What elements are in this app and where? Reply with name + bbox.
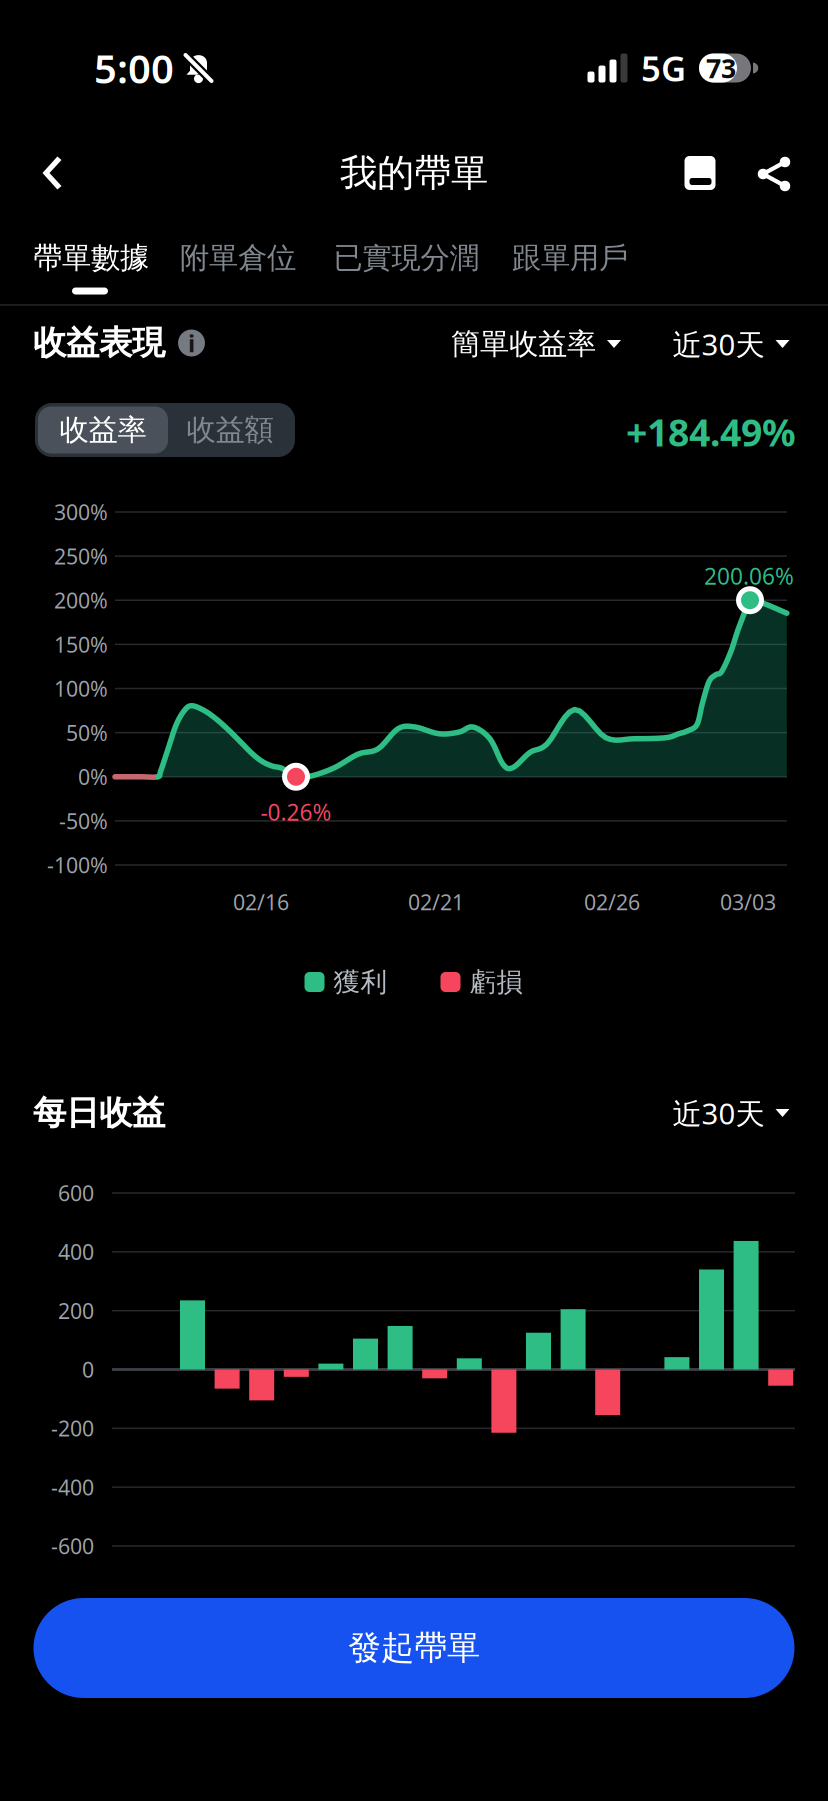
staticText: 5G (641, 45, 686, 91)
button[interactable]: 發起帶單 (33, 1598, 794, 1698)
staticText: 收益額 (186, 412, 273, 448)
button[interactable]: 近30天 (672, 1081, 789, 1144)
staticText: 附單倉位 (180, 240, 296, 276)
button[interactable]: 跟單用戶 (499, 221, 641, 295)
staticText: i (188, 327, 195, 359)
staticText: 02/21 (408, 888, 464, 916)
staticText: 02/16 (233, 888, 289, 916)
staticText: 收益表現 (33, 322, 165, 363)
staticText: +184.49% (626, 407, 796, 457)
staticText: 150% (54, 630, 108, 658)
staticText: 200 (58, 1296, 94, 1325)
button[interactable]: 收益率 (38, 406, 168, 453)
staticText: 獲利 (333, 966, 387, 998)
button[interactable]: 帶單數據 (20, 221, 162, 295)
button[interactable]: 已實現分潤 (320, 221, 491, 295)
staticText: 200% (54, 586, 108, 614)
staticText: 02/26 (584, 888, 640, 916)
staticText: 近30天 (672, 1093, 764, 1132)
staticText: 600 (58, 1179, 94, 1207)
button[interactable]: 附單倉位 (167, 221, 309, 295)
button[interactable]: 收益額 (168, 406, 292, 453)
button[interactable]: Back (14, 132, 90, 214)
staticText: 每日收益 (33, 1092, 165, 1133)
staticText: -400 (51, 1473, 94, 1501)
staticText: -100% (47, 851, 108, 879)
staticText: 已實現分潤 (333, 240, 478, 276)
staticText: 73 (706, 50, 736, 86)
staticText: -50% (59, 807, 108, 835)
staticText: 200.06% (704, 561, 794, 591)
staticText: -600 (51, 1532, 94, 1560)
staticText: -200 (51, 1414, 94, 1442)
staticText: 50% (66, 718, 108, 747)
staticText: 5:00 (94, 41, 174, 94)
button[interactable]: 近30天 (672, 312, 789, 375)
staticText: 我的帶單 (340, 150, 488, 196)
staticText: 0% (78, 763, 108, 791)
staticText: 跟單用戶 (512, 240, 628, 276)
staticText: 0 (82, 1355, 94, 1384)
staticText: 收益率 (59, 412, 146, 448)
staticText: -0.26% (260, 797, 331, 827)
staticText: 近30天 (672, 324, 764, 363)
staticText: 虧損 (469, 966, 523, 998)
button[interactable]: Orders (662, 135, 738, 211)
staticText: 發起帶單 (348, 1627, 480, 1668)
staticText: 300% (54, 498, 108, 526)
staticText: 100% (54, 674, 108, 703)
staticText: 400 (58, 1238, 94, 1266)
button[interactable]: 簡單收益率 (451, 314, 621, 374)
button[interactable]: Share (736, 136, 812, 212)
staticText: 03/03 (720, 888, 776, 916)
staticText: 250% (54, 542, 108, 570)
staticText: 簡單收益率 (451, 326, 596, 362)
staticText: 帶單數據 (33, 240, 149, 276)
